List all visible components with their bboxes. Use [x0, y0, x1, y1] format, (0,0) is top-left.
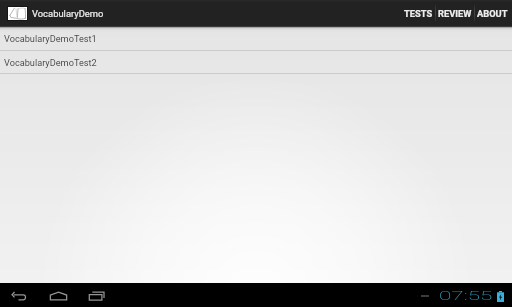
- button[interactable]: Home: [48, 284, 69, 307]
- button[interactable]: VocabularyDemoTest2: [0, 51, 512, 74]
- button[interactable]: VocabularyDemoTest1: [0, 26, 512, 51]
- staticText: 07:55: [439, 288, 494, 300]
- button[interactable]: VocabularyDemo: [0, 0, 110, 26]
- button[interactable]: TESTS: [402, 0, 435, 26]
- staticText: VocabularyDemoTest1: [4, 33, 97, 44]
- staticText: ABOUT: [477, 8, 508, 19]
- button[interactable]: REVIEW: [436, 0, 474, 26]
- staticText: VocabularyDemoTest2: [4, 57, 97, 68]
- staticText: VocabularyDemo: [32, 8, 104, 19]
- button[interactable]: Back: [10, 284, 28, 307]
- staticText: REVIEW: [438, 8, 472, 19]
- button[interactable]: Status: 07:55, battery charging: [421, 284, 512, 307]
- button[interactable]: ABOUT: [475, 0, 510, 26]
- button[interactable]: Recent apps: [87, 284, 106, 307]
- staticText: TESTS: [404, 8, 433, 19]
